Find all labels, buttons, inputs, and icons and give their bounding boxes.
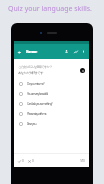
staticText: Do you miss me? xyxy=(27,82,45,86)
staticText: 0 xyxy=(32,159,34,163)
staticText: あなたが大好きです xyxy=(18,71,43,75)
staticText: 0 xyxy=(22,159,24,163)
button[interactable]: Can I ask you something? xyxy=(14,99,89,109)
button[interactable]: More options xyxy=(80,48,87,55)
button[interactable]: You are very beautiful xyxy=(14,89,89,99)
staticText: 1/10 xyxy=(80,159,85,163)
button[interactable]: Profile xyxy=(63,48,70,55)
button[interactable]: Wrong count xyxy=(28,159,34,163)
button[interactable]: Correct count xyxy=(18,159,24,163)
staticText: Quiz your language skills. xyxy=(8,4,92,14)
button[interactable]: Do you miss me? xyxy=(14,79,89,89)
button[interactable]: Play audio xyxy=(80,68,85,73)
staticText: You are very beautiful xyxy=(27,92,48,96)
button[interactable]: Statistics xyxy=(72,48,79,55)
staticText: この文はどんな意味ですか？ xyxy=(18,65,52,69)
staticText: I love you. xyxy=(27,122,37,126)
staticText: Can I ask you something? xyxy=(27,102,53,106)
button[interactable]: Back xyxy=(16,49,23,56)
button[interactable]: I love you. xyxy=(14,119,89,129)
button[interactable]: Please stay with me. xyxy=(14,109,89,119)
staticText: Please stay with me. xyxy=(27,112,47,116)
staticText: Romance xyxy=(26,49,37,54)
